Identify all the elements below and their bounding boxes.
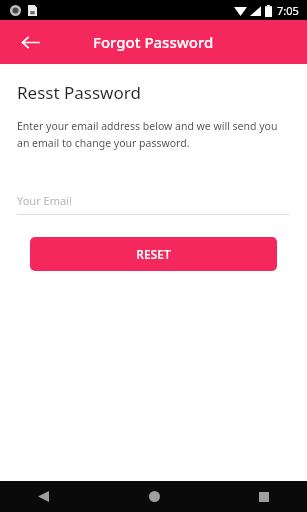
button[interactable]: Home	[103, 481, 205, 512]
staticText: Enter your email address below and we wi…	[17, 119, 290, 150]
button[interactable]: RESET	[30, 237, 277, 271]
staticText: Your Email	[17, 193, 72, 208]
staticText: Resst Password	[17, 81, 141, 104]
staticText: RESET	[136, 246, 171, 262]
staticText: 7:05	[277, 3, 299, 18]
button[interactable]: Back	[0, 481, 103, 512]
staticText: Forgot Password	[93, 32, 214, 52]
button[interactable]: Back	[12, 24, 48, 60]
button[interactable]: Your Email	[17, 185, 290, 215]
button[interactable]: Recent apps	[205, 481, 307, 512]
